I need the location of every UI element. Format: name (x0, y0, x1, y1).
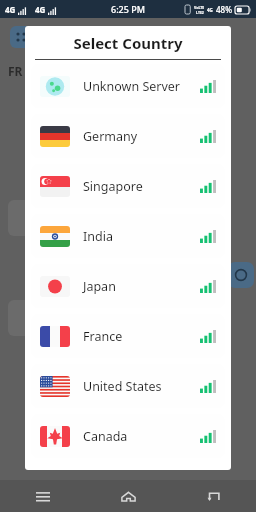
staticText: United States (83, 378, 162, 395)
staticText: 48% (216, 4, 232, 15)
staticText: LTE2 (196, 10, 204, 15)
button[interactable]: Home (86, 480, 171, 512)
staticText: Japan (83, 278, 116, 295)
staticText: 4G (5, 4, 16, 15)
staticText: Germany (83, 128, 138, 145)
button[interactable]: France (31, 314, 225, 358)
staticText: Unknown Server (83, 78, 181, 95)
button[interactable]: Singapore (31, 164, 225, 208)
staticText: Select Country (73, 33, 183, 53)
button[interactable]: United States (31, 364, 225, 408)
button[interactable]: Japan (31, 264, 225, 308)
staticText: Singapore (83, 178, 143, 195)
button[interactable]: Unknown Server (31, 64, 225, 108)
button[interactable]: Germany (31, 114, 225, 158)
staticText: FR (8, 63, 23, 79)
button[interactable]: India (31, 214, 225, 258)
staticText: France (83, 328, 123, 345)
staticText: 4G (35, 4, 46, 15)
staticText: VoLTE (194, 5, 205, 10)
button[interactable]: Back (171, 480, 256, 512)
button[interactable]: Canada (31, 414, 225, 458)
button[interactable]: Recent apps (0, 480, 86, 512)
staticText: 4G (207, 7, 213, 13)
staticText: India (83, 228, 113, 245)
staticText: Canada (83, 428, 128, 445)
staticText: 6:25 PM (111, 3, 145, 15)
